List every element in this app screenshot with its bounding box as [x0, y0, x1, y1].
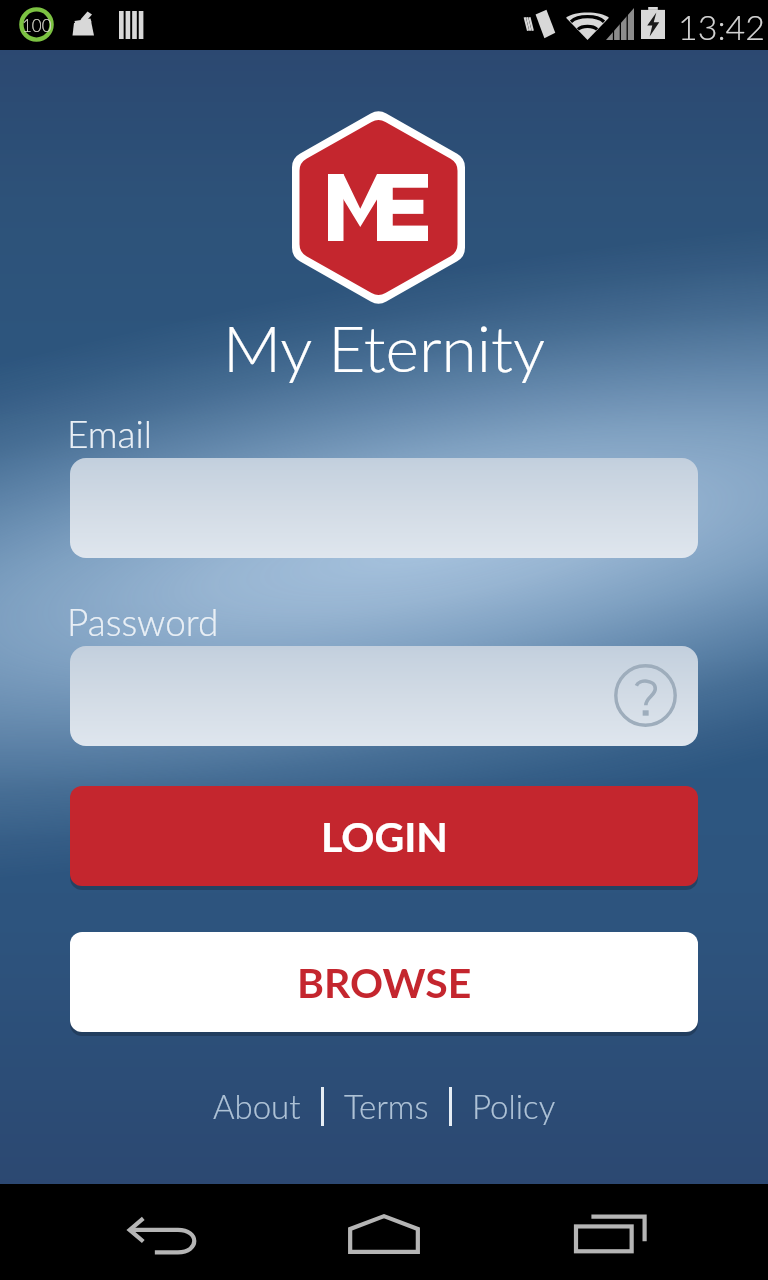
button[interactable]: About	[212, 1078, 302, 1134]
staticText: My Eternity	[223, 309, 546, 386]
button[interactable]: LOGIN	[70, 786, 698, 886]
staticText: Email	[67, 411, 152, 455]
button[interactable]: Home	[334, 1202, 434, 1266]
button[interactable]: BROWSE	[70, 932, 698, 1032]
staticText: LOGIN	[321, 812, 448, 861]
staticText: About	[213, 1086, 301, 1126]
button[interactable]: Back	[113, 1203, 213, 1267]
staticText: 100	[22, 15, 52, 35]
staticText: Policy	[472, 1086, 556, 1126]
button[interactable]: Terms	[343, 1078, 430, 1134]
staticText: Password	[67, 599, 219, 643]
button[interactable]: Password help	[614, 664, 677, 727]
staticText: Terms	[344, 1086, 429, 1126]
button[interactable]: Policy	[471, 1078, 557, 1134]
button[interactable]: Recents	[560, 1212, 660, 1256]
staticText: BROWSE	[297, 958, 472, 1007]
button[interactable]	[70, 458, 698, 558]
button[interactable]: Password help	[70, 646, 698, 746]
staticText: 13:42	[678, 6, 766, 47]
